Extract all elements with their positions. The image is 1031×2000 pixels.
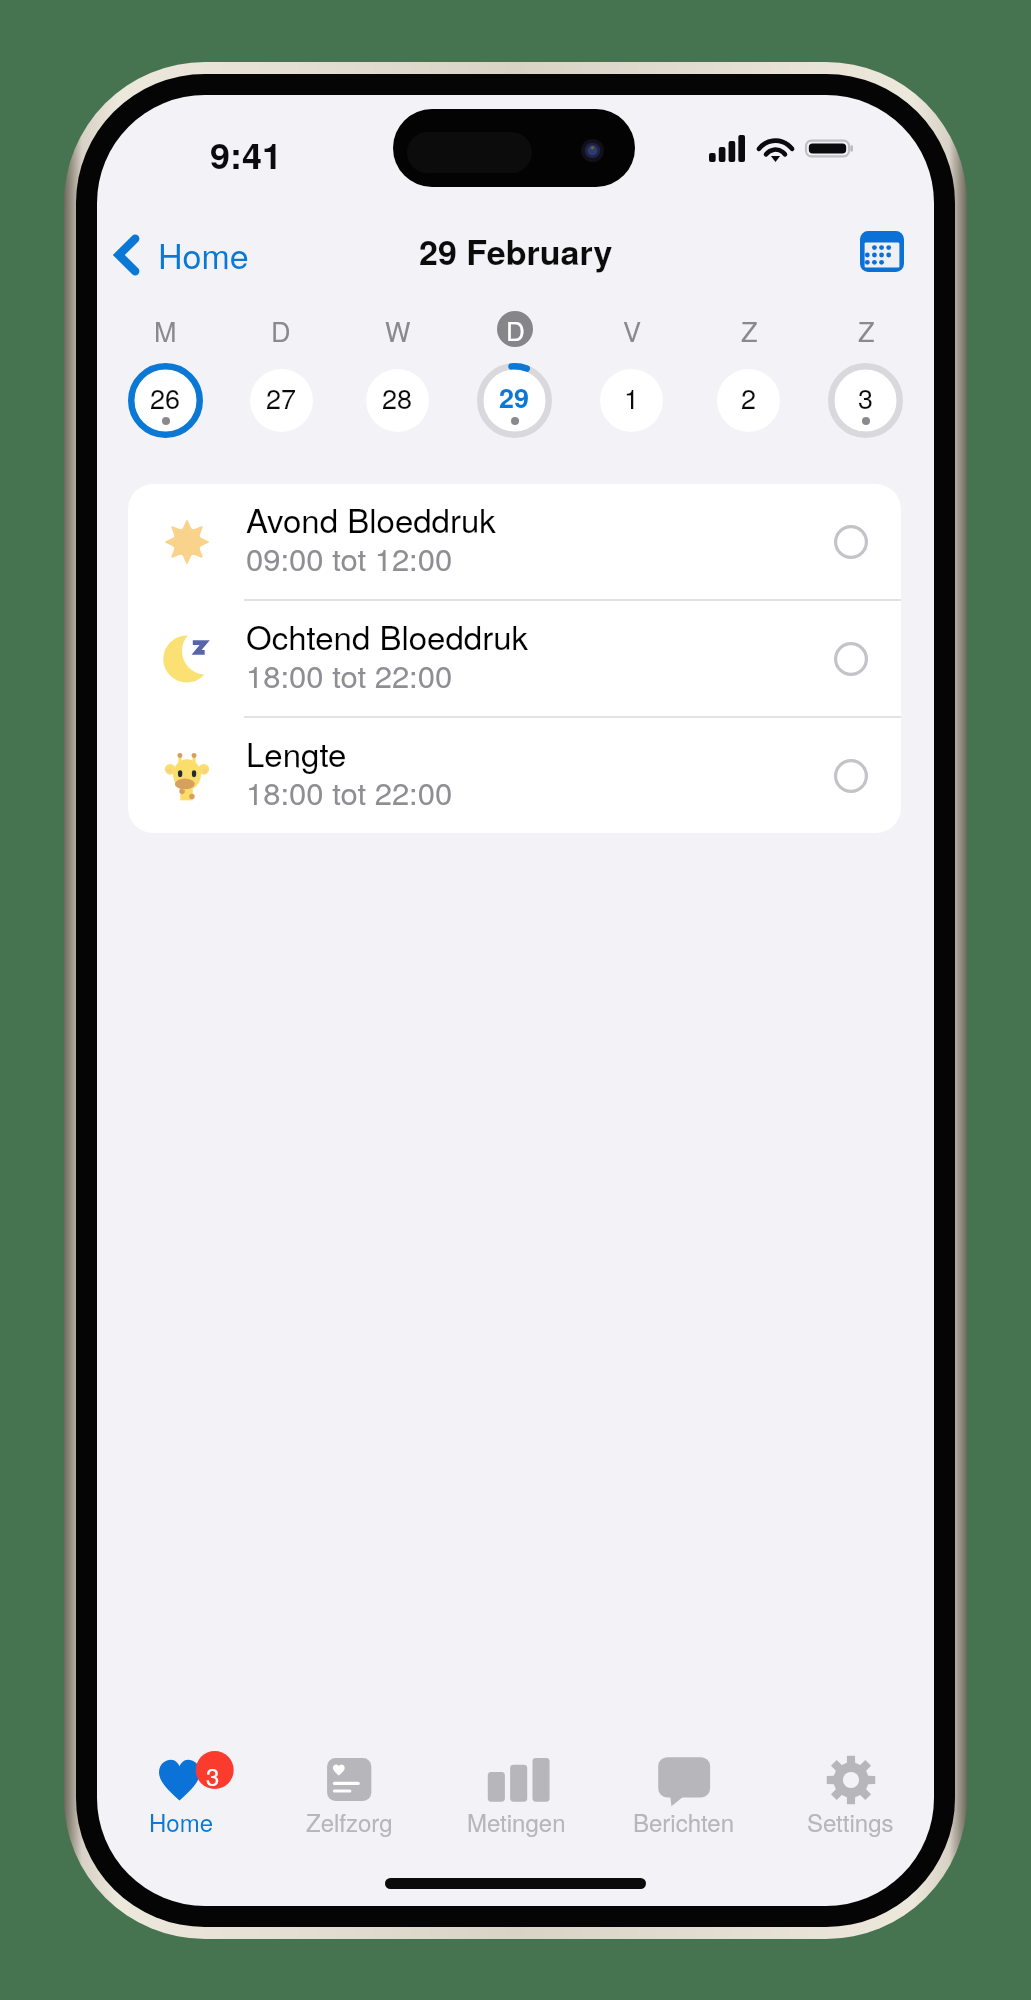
staticText: Lengte [246, 729, 347, 776]
staticText: 29 [499, 378, 530, 417]
staticText: Metingen [467, 1804, 566, 1838]
staticText: Avond Bloeddruk [246, 495, 496, 542]
button[interactable]: Settings [767, 1737, 934, 1877]
staticText: Z [858, 311, 875, 347]
staticText: 3 [858, 378, 874, 417]
staticText: 28 [382, 378, 413, 417]
button[interactable]: D [223, 311, 339, 438]
staticText: 2 [741, 378, 757, 417]
staticText: 27 [266, 378, 297, 417]
staticText: 29 February [419, 227, 613, 276]
button[interactable]: Zelfzorg [265, 1737, 433, 1877]
button[interactable]: Metingen [433, 1737, 600, 1877]
button[interactable]: Lengte [128, 718, 901, 833]
button[interactable]: Berichten [600, 1737, 767, 1877]
staticText: M [154, 311, 177, 347]
staticText: 09:00 tot 12:00 [246, 535, 453, 579]
button[interactable]: Home [97, 1737, 265, 1877]
staticText: Settings [807, 1804, 894, 1838]
button[interactable]: Z [690, 311, 807, 438]
staticText: Home [149, 1804, 214, 1838]
staticText: W [385, 311, 411, 347]
button[interactable]: Ochtend Bloeddruk [128, 601, 901, 716]
button[interactable]: V [573, 311, 690, 438]
staticText: Zelfzorg [306, 1804, 393, 1838]
staticText: 9:41 [210, 128, 283, 180]
button[interactable]: Home [103, 217, 265, 292]
button[interactable]: W [339, 311, 456, 438]
staticText: 18:00 tot 22:00 [246, 652, 453, 696]
staticText: 1 [624, 378, 640, 417]
staticText: 18:00 tot 22:00 [246, 769, 453, 813]
staticText: Z [741, 311, 758, 347]
button[interactable]: Z [807, 311, 924, 438]
staticText: V [623, 311, 642, 347]
staticText: Ochtend Bloeddruk [246, 612, 528, 659]
button[interactable]: D [456, 311, 573, 438]
button[interactable]: Open calendar [857, 227, 906, 276]
staticText: Berichten [633, 1804, 735, 1838]
staticText: D [271, 311, 291, 347]
staticText: 26 [150, 378, 181, 417]
staticText: 3 [206, 1758, 220, 1792]
button[interactable]: Avond Bloeddruk [128, 484, 901, 599]
button[interactable]: M [107, 311, 223, 438]
staticText: D [506, 311, 525, 347]
staticText: Home [158, 230, 249, 279]
